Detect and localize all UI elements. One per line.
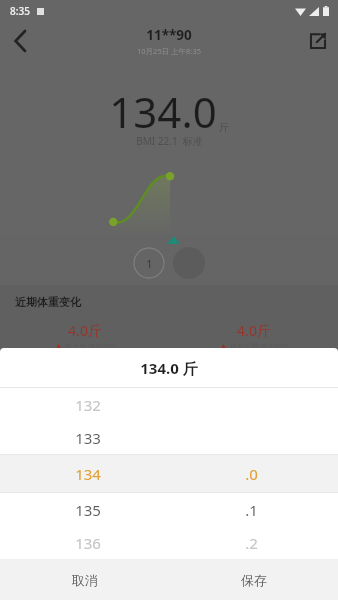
staticText: 保存 [241, 572, 267, 588]
staticText: 10月25日 上午8:35 [137, 46, 201, 56]
button[interactable]: 132 [0, 388, 338, 421]
staticText: 11**90 [146, 26, 192, 44]
staticText: 134.0 [109, 83, 217, 140]
staticText: 133 [75, 428, 101, 448]
button[interactable]: 136 [0, 526, 338, 559]
button[interactable] [173, 247, 205, 279]
staticText: 134.0 斤 [140, 358, 198, 378]
staticText: .0 [245, 464, 258, 484]
button[interactable]: Share [298, 21, 338, 61]
staticText: 比上次 (9月3日) [65, 342, 115, 352]
staticText: 136 [75, 533, 101, 553]
staticText: 134 [75, 464, 101, 484]
staticText: 取消 [72, 572, 98, 588]
button[interactable]: 133 [0, 421, 338, 454]
staticText: 斤 [219, 121, 229, 134]
staticText: 4.0斤 [68, 321, 102, 340]
button[interactable]: 1 [133, 247, 165, 279]
staticText: .1 [245, 500, 258, 520]
staticText: 比初夭期 (9月3日) [230, 342, 287, 352]
button[interactable]: 取消 [0, 559, 169, 600]
button[interactable]: 保存 [169, 559, 338, 600]
staticText: 8:35 [10, 4, 30, 18]
button[interactable]: 134 [0, 454, 338, 493]
staticText: BMI 22.1 标准 [136, 134, 203, 148]
button[interactable]: 135 [0, 493, 338, 526]
staticText: 4.0斤 [237, 321, 271, 340]
staticText: 近期体重变化 [15, 295, 81, 309]
staticText: 135 [75, 500, 101, 520]
button[interactable]: Back [0, 21, 40, 61]
staticText: .2 [245, 533, 258, 553]
staticText: 132 [75, 395, 101, 415]
staticText: 1 [146, 256, 153, 271]
